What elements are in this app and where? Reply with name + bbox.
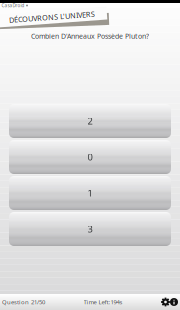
staticText: 3: [87, 223, 92, 235]
button[interactable]: 0: [9, 140, 171, 174]
staticText: DÉCOUVRONS L'UNIVERS: [9, 12, 95, 22]
staticText: Combien D'Anneaux Possède Pluton?: [31, 31, 149, 41]
button[interactable]: 1: [9, 176, 171, 210]
button[interactable]: 2: [9, 104, 171, 138]
staticText: 1: [87, 187, 92, 199]
button[interactable]: Settings: [161, 297, 170, 306]
staticText: CasaDroid: [1, 2, 24, 9]
staticText: Time Left:194s: [83, 298, 122, 306]
staticText: 2: [87, 115, 92, 127]
button[interactable]: Info: [170, 298, 178, 306]
staticText: Question 21/50: [2, 298, 45, 306]
button[interactable]: 3: [9, 212, 171, 246]
staticText: 0: [87, 151, 92, 163]
